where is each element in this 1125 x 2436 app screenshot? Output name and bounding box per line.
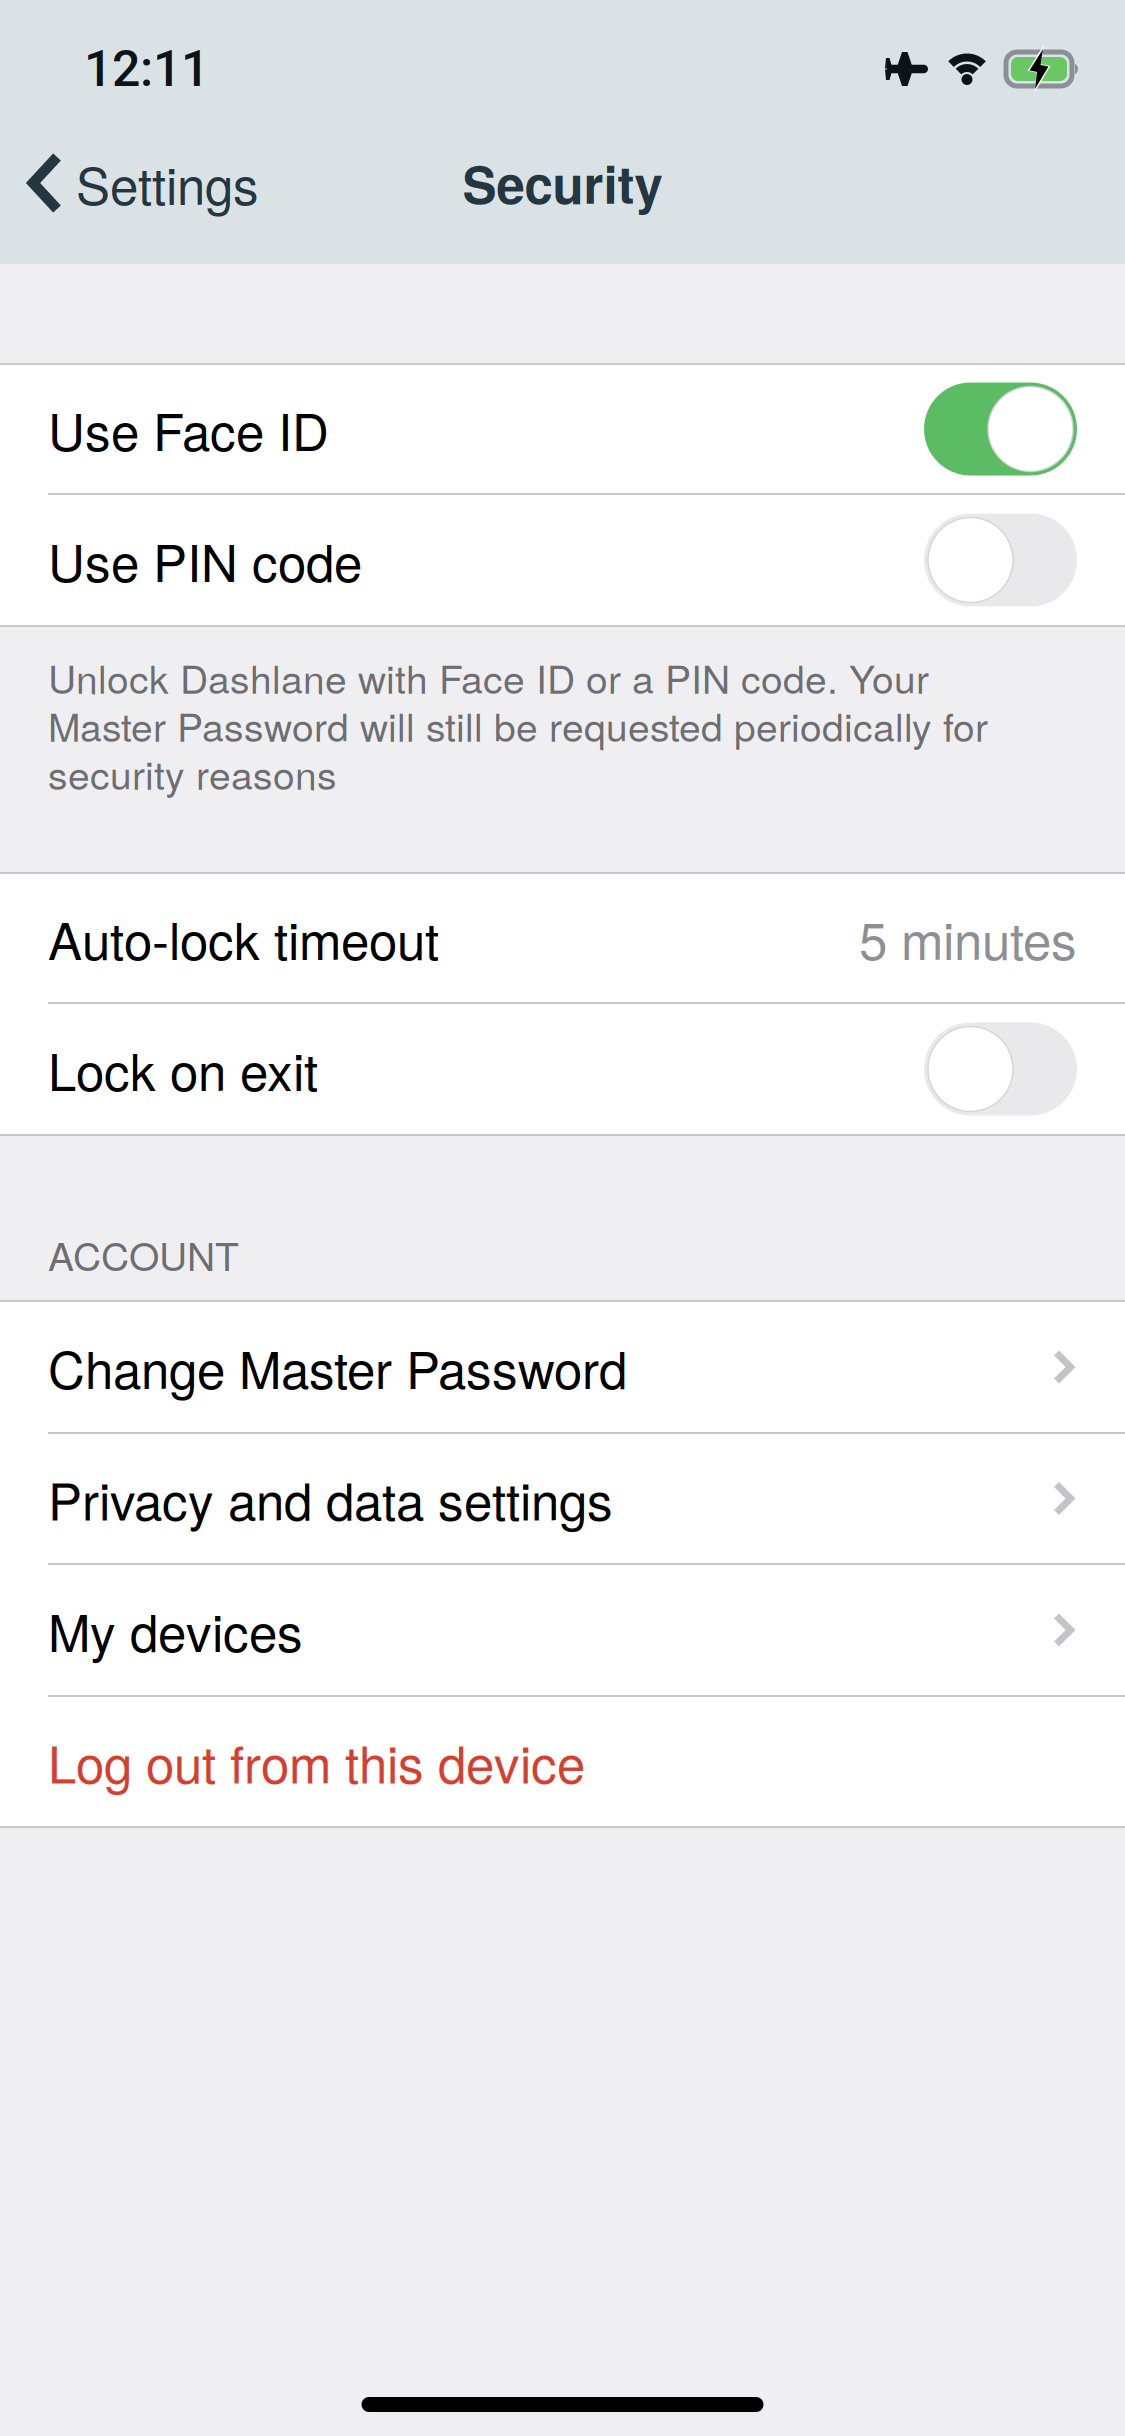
staticText: Lock on exit [48,1032,318,1105]
staticText: My devices [48,1593,303,1666]
staticText: Log out from this device [48,1725,585,1798]
staticText: Settings [76,146,259,219]
button[interactable]: Privacy and data settings [0,1434,1125,1563]
staticText: Change Master Password [48,1330,627,1403]
staticText: security reasons [48,745,337,801]
staticText: Unlock Dashlane with Face ID or a PIN co… [48,649,929,705]
button[interactable]: Use Face ID [924,382,1077,475]
staticText: 5 minutes [859,901,1077,974]
staticText: ACCOUNT [48,1226,239,1282]
button[interactable]: Settings [0,146,259,219]
button[interactable]: Change Master Password [0,1302,1125,1432]
staticText: Security [462,146,662,219]
staticText: Privacy and data settings [48,1462,613,1535]
button[interactable]: My devices [0,1565,1125,1695]
staticText: 12:11 [84,40,209,98]
button[interactable]: Auto-lock timeout [0,874,1125,1002]
staticText: Auto-lock timeout [48,901,439,974]
staticText: Master Password will still be requested … [48,697,988,753]
button[interactable]: Log out from this device [0,1697,1125,1826]
staticText: Use Face ID [48,392,329,465]
button[interactable]: Use PIN code [924,513,1077,606]
staticText: Use PIN code [48,523,362,596]
button[interactable]: Lock on exit [924,1022,1077,1115]
